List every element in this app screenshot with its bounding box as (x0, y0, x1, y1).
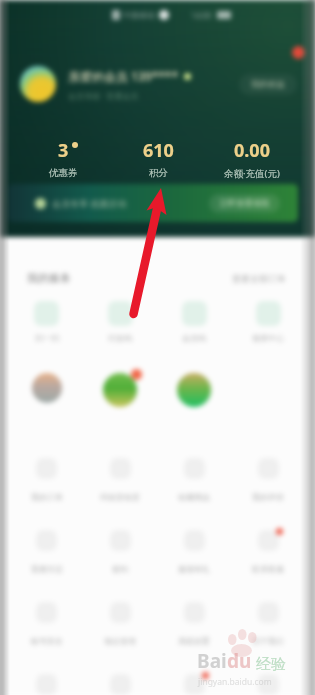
button[interactable]: 0.00 (205, 127, 299, 169)
staticText: 积分 (149, 167, 168, 179)
staticText: 余额·充值(元) (224, 156, 280, 169)
staticText: 610 (143, 127, 174, 152)
button[interactable]: 3 (16, 138, 111, 179)
staticText: du (227, 648, 252, 674)
staticText: Bai (197, 648, 227, 674)
button[interactable]: 功能 (10, 373, 83, 403)
staticText: 优惠券 (49, 167, 78, 179)
staticText: 查看全部订单 (232, 273, 286, 284)
staticText: 积分 (149, 156, 168, 168)
button[interactable]: 消息 (292, 46, 305, 59)
button[interactable]: 扫一扫 (10, 301, 83, 343)
staticText: 0.00 (234, 127, 270, 152)
staticText: 我的订单 (31, 492, 63, 502)
button[interactable]: 我的评价 (231, 458, 305, 502)
staticText: 经验 (256, 655, 286, 674)
staticText: 我的评价 (252, 492, 284, 502)
staticText: 地址管理 (104, 636, 136, 646)
button[interactable]: 0.00 (205, 138, 299, 180)
staticText: 中国移动 (123, 10, 155, 20)
button[interactable]: 我的权益 (239, 74, 297, 95)
button[interactable]: 付款码 (83, 301, 157, 343)
button[interactable]: 签到 (83, 530, 157, 574)
button[interactable]: 待发货收货 (83, 458, 157, 502)
staticText: 立即查看领取 (219, 198, 270, 209)
button[interactable]: 关于我们 (231, 602, 305, 646)
staticText: 联系客服 (252, 564, 284, 574)
staticText: 收藏商品 (178, 492, 210, 502)
staticText: 会员等级 · 普通会员 (68, 90, 139, 101)
staticText: 14:09 (191, 10, 212, 21)
staticText: 付款码 (108, 333, 132, 343)
button[interactable]: 退出登录 (231, 674, 305, 695)
button[interactable]: 收藏商品 (157, 458, 231, 502)
button[interactable]: 意见反馈 (83, 674, 157, 695)
staticText: jingyan.baidu.com (198, 676, 272, 688)
button[interactable]: 联系客服 (231, 530, 305, 574)
staticText: 扫一扫 (35, 333, 59, 343)
button[interactable]: 账号安全 (10, 602, 83, 646)
staticText: 会员专享 优惠活动 (52, 197, 127, 209)
button[interactable]: 常见问题 (10, 674, 83, 695)
staticText: 0.00 (234, 138, 270, 163)
staticText: 我要开店 (31, 564, 63, 574)
button[interactable]: 我的订单 (10, 458, 83, 502)
button[interactable]: 会员专享 优惠活动 (8, 184, 298, 222)
staticText: 3 (58, 138, 69, 163)
staticText: 我的权益 (251, 79, 285, 90)
button[interactable]: 邀请有礼 (157, 530, 231, 574)
button[interactable]: 更多服务 (157, 674, 231, 695)
staticText: 待发货收货 (100, 492, 140, 502)
button[interactable]: 头像 (20, 66, 56, 102)
button[interactable]: 立即查看领取 (219, 198, 270, 209)
button[interactable]: 功能 (83, 373, 157, 407)
staticText: 系统设置 (178, 636, 210, 646)
button[interactable]: 会员码 (157, 301, 231, 343)
staticText: 我的服务 (27, 271, 71, 285)
staticText: 关于我们 (252, 636, 284, 646)
staticText: 领券中心 (252, 333, 284, 343)
staticText: 3 (58, 127, 69, 152)
button[interactable]: 3 (16, 127, 111, 168)
staticText: 亲爱的会员 139**** (68, 68, 179, 84)
staticText: 邀请有礼 (178, 564, 210, 574)
button[interactable]: 系统设置 (157, 602, 231, 646)
staticText: 签到 (112, 564, 128, 574)
staticText: 优惠券 (49, 156, 78, 168)
button[interactable]: 领券中心 (231, 301, 305, 343)
staticText: 会员码 (182, 333, 206, 343)
button[interactable]: 610 (111, 138, 205, 179)
staticText: 余额·充值(元) (224, 167, 280, 180)
button[interactable]: 查看全部订单 (232, 273, 286, 284)
button[interactable]: 地址管理 (83, 602, 157, 646)
button[interactable]: 功能 (157, 373, 231, 407)
staticText: 账号安全 (31, 636, 63, 646)
button[interactable]: 我要开店 (10, 530, 83, 574)
button[interactable]: 610 (111, 127, 205, 168)
staticText: 610 (143, 138, 174, 163)
